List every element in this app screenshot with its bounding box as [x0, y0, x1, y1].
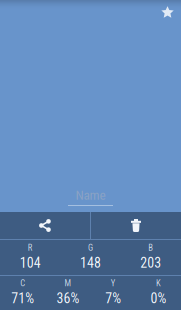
- staticText: K: [156, 278, 161, 288]
- button[interactable]: Share: [0, 212, 90, 239]
- staticText: R: [28, 243, 33, 253]
- staticText: B: [148, 243, 153, 253]
- staticText: 148: [80, 255, 101, 271]
- staticText: 36%: [56, 290, 79, 307]
- staticText: 7%: [105, 290, 121, 307]
- staticText: G: [88, 243, 93, 253]
- staticText: 0%: [150, 290, 166, 307]
- button[interactable]: Delete: [91, 212, 181, 239]
- staticText: C: [20, 278, 25, 288]
- button[interactable]: Favourite: [152, 0, 181, 28]
- staticText: Y: [111, 278, 116, 288]
- staticText: 203: [140, 255, 161, 271]
- staticText: 104: [20, 255, 41, 271]
- staticText: 71%: [11, 290, 34, 307]
- staticText: Name: [75, 187, 105, 203]
- staticText: M: [64, 278, 71, 288]
